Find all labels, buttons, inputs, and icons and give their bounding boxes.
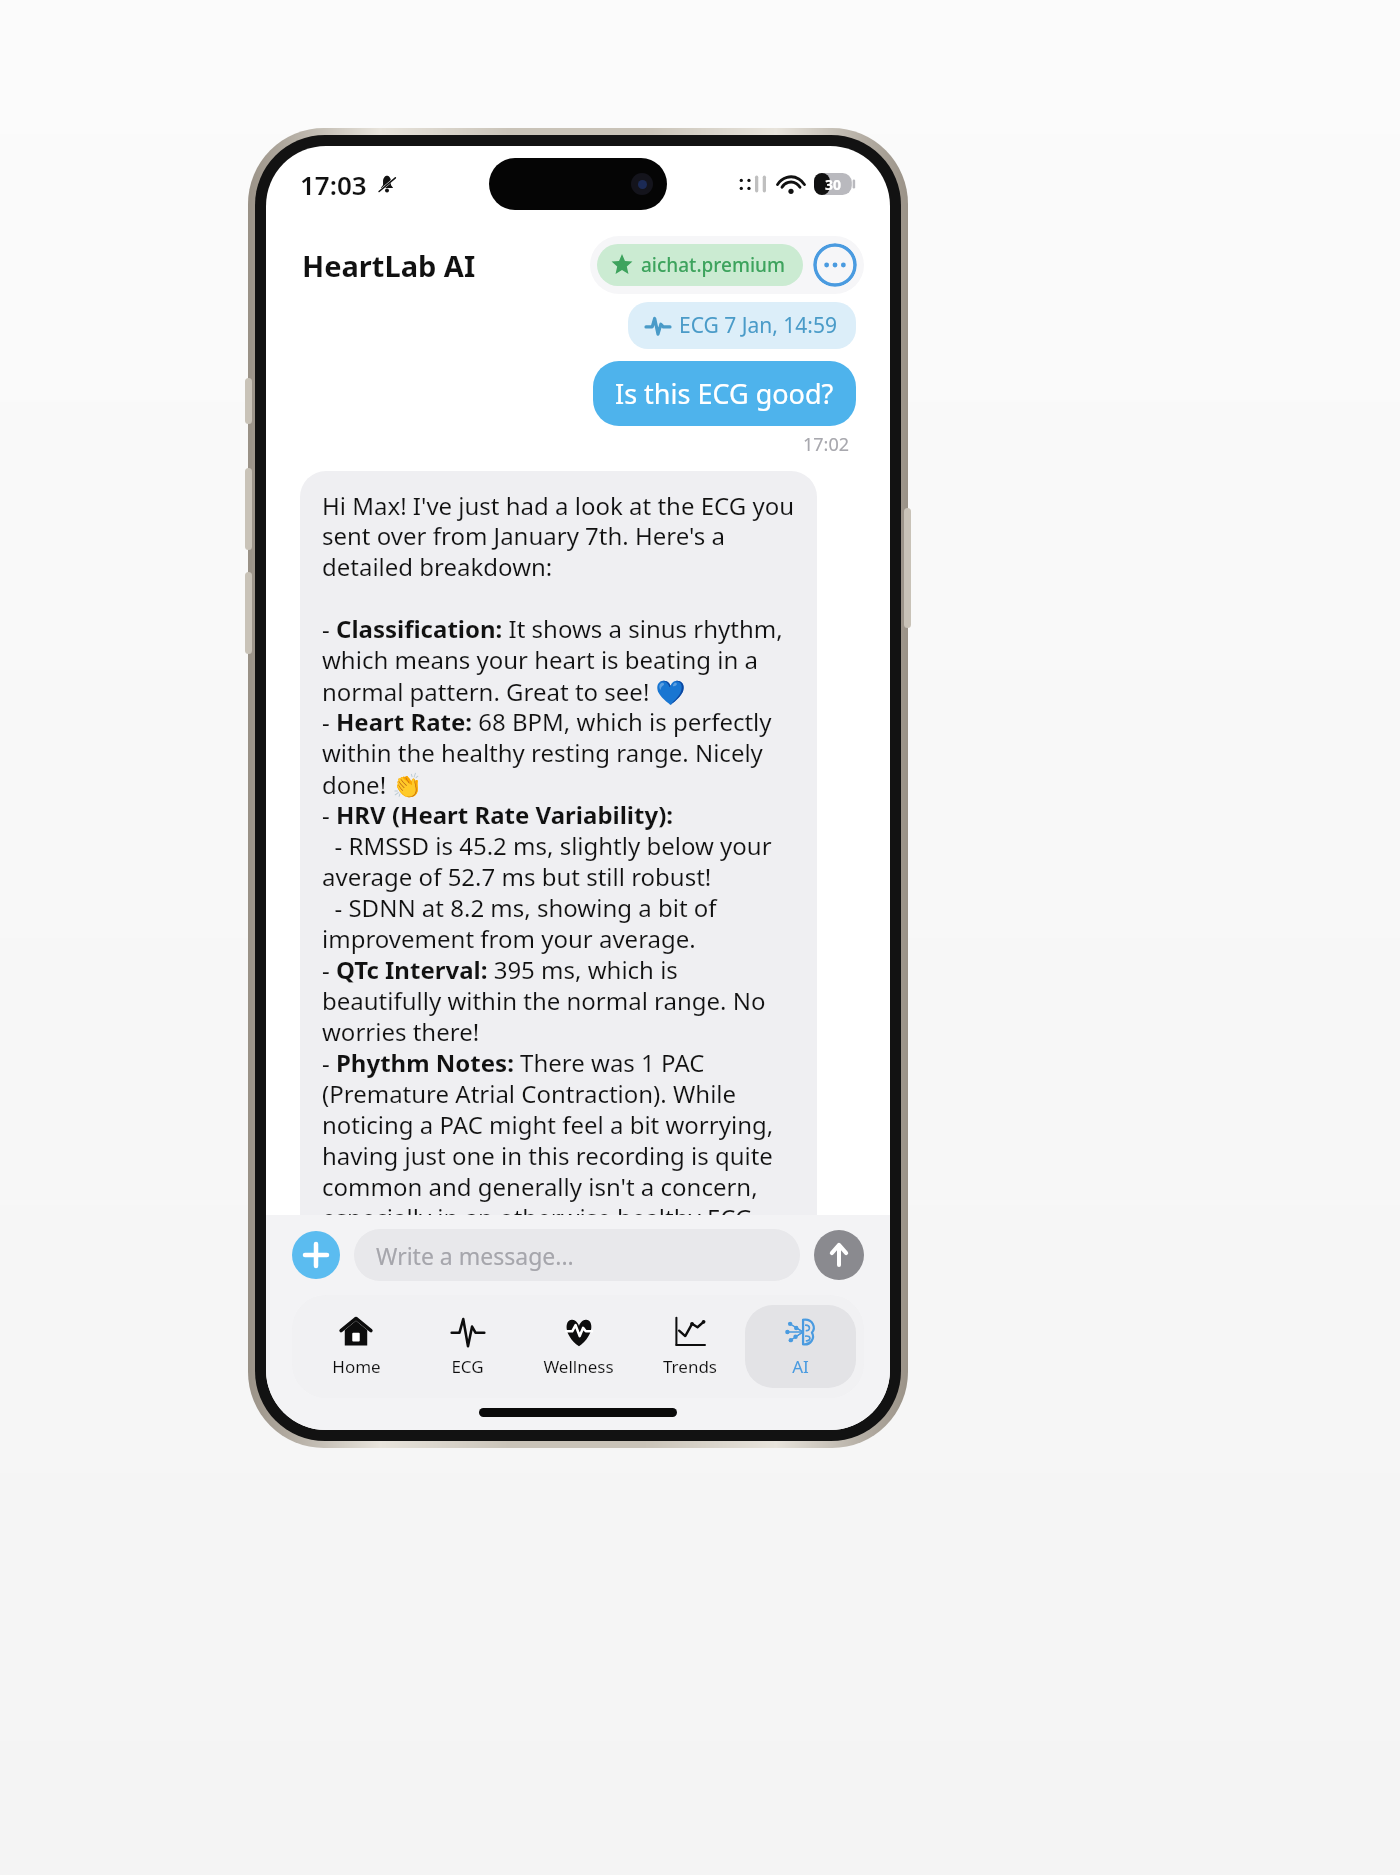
button[interactable]: Write a message... (354, 1229, 800, 1281)
staticText: Hi Max! I've just had a look at the ECG … (322, 489, 795, 1358)
button[interactable]: Is this ECG good? (593, 361, 856, 426)
staticText: 17:03 (300, 167, 367, 202)
staticText: Trends (663, 1355, 717, 1378)
button[interactable]: aichat.premium (597, 244, 803, 286)
staticText: aichat.premium (641, 252, 785, 278)
staticText: 17:02 (803, 432, 850, 457)
button[interactable]: ECG 7 Jan, 14:59 (628, 302, 856, 349)
button[interactable]: Trends (634, 1305, 745, 1388)
staticText: AI (792, 1355, 809, 1378)
button[interactable]: Home (300, 1305, 412, 1388)
button[interactable]: AI (745, 1305, 856, 1388)
staticText: Wellness (543, 1355, 614, 1378)
staticText: ECG 7 Jan, 14:59 (679, 311, 838, 340)
button[interactable]: Hi Max! I've just had a look at the ECG … (300, 471, 817, 1376)
staticText: ECG (451, 1355, 484, 1378)
button[interactable]: Send (814, 1230, 864, 1280)
staticText: 30 (825, 175, 842, 194)
staticText: Home (332, 1355, 381, 1378)
button[interactable]: Wellness (523, 1305, 634, 1388)
button[interactable]: Add attachment (292, 1231, 340, 1279)
staticText: HeartLab AI (302, 246, 476, 285)
staticText: Write a message... (376, 1240, 574, 1271)
button[interactable]: More options (813, 243, 857, 287)
button[interactable]: ECG (412, 1305, 523, 1388)
staticText: Is this ECG good? (615, 375, 834, 412)
